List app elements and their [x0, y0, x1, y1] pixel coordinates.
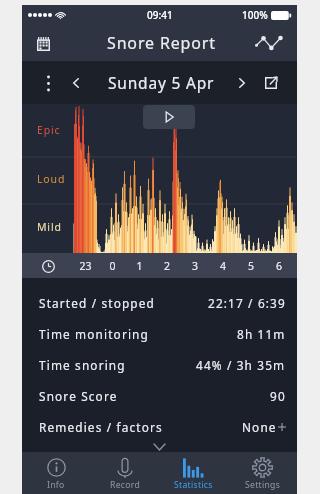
- staticText: Statistics: [174, 479, 213, 491]
- staticText: 100%: [242, 8, 268, 22]
- staticText: Time monitoring: [39, 326, 149, 342]
- staticText: Remedies / factors: [39, 419, 163, 435]
- button[interactable]: Time snoring: [22, 349, 297, 380]
- button[interactable]: Info: [22, 452, 90, 494]
- button[interactable]: Remedies / factors: [22, 411, 297, 442]
- staticText: Sunday 5 Apr: [108, 72, 215, 93]
- button[interactable]: Trends: [254, 29, 282, 57]
- staticText: 4: [209, 259, 237, 273]
- staticText: 8h 11m: [237, 326, 286, 342]
- button[interactable]: Settings: [228, 452, 297, 494]
- staticText: 09:41: [147, 8, 173, 22]
- staticText: Time snoring: [39, 357, 126, 373]
- staticText: Epic: [37, 123, 61, 137]
- staticText: Settings: [245, 479, 281, 491]
- button[interactable]: More options: [36, 71, 60, 95]
- staticText: 5: [237, 259, 265, 273]
- staticText: Info: [47, 479, 65, 491]
- staticText: Started / stopped: [39, 295, 155, 311]
- staticText: Snore Report: [107, 32, 216, 54]
- button[interactable]: Calendar: [30, 30, 57, 57]
- staticText: 22:17 / 6:39: [208, 295, 286, 311]
- staticText: 1: [126, 259, 153, 273]
- staticText: None: [242, 419, 277, 435]
- staticText: 0: [99, 259, 126, 273]
- staticText: 2: [153, 259, 181, 273]
- button[interactable]: Share: [259, 71, 283, 95]
- button[interactable]: Statistics: [159, 452, 228, 494]
- button[interactable]: Started / stopped: [22, 287, 297, 318]
- staticText: 90: [270, 388, 286, 404]
- button[interactable]: Time monitoring: [22, 318, 297, 349]
- staticText: 6: [265, 259, 293, 273]
- button[interactable]: Next day: [230, 71, 254, 95]
- staticText: 44% / 3h 35m: [196, 357, 286, 373]
- staticText: 23: [72, 259, 99, 273]
- button[interactable]: Previous day: [64, 71, 88, 95]
- button[interactable]: Play: [143, 105, 195, 129]
- button[interactable]: Snore Score: [22, 380, 297, 411]
- staticText: Loud: [37, 172, 66, 186]
- staticText: Mild: [37, 220, 62, 234]
- staticText: Snore Score: [39, 388, 118, 404]
- button[interactable]: Record: [90, 452, 159, 494]
- staticText: Record: [110, 479, 140, 491]
- staticText: 3: [181, 259, 209, 273]
